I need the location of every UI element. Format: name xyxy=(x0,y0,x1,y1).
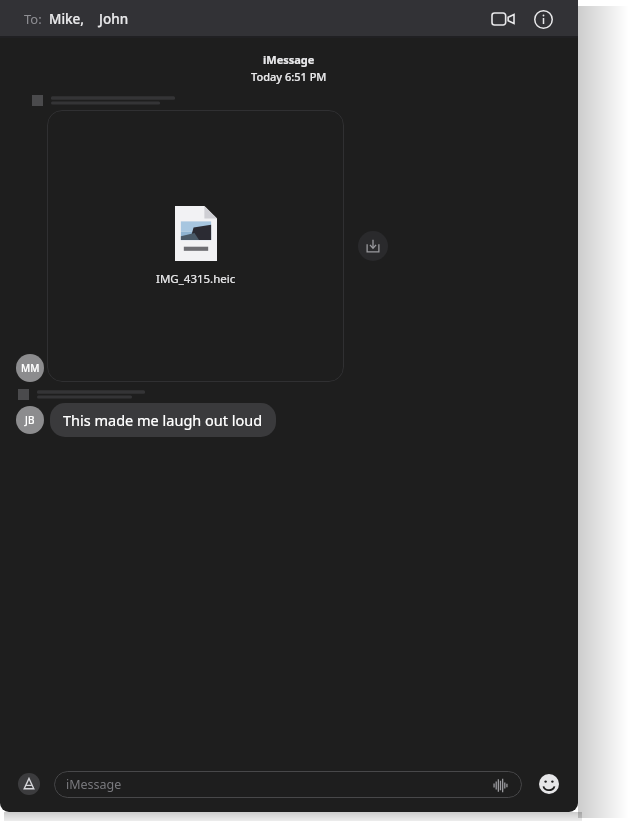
staticText: To: xyxy=(24,10,42,28)
button[interactable]: Mike, xyxy=(49,10,85,28)
button[interactable]: JB xyxy=(16,406,44,434)
button[interactable]: This made me laugh out loud xyxy=(50,403,276,437)
button[interactable]: IMG_4315.heic xyxy=(47,110,344,382)
staticText: Today 6:51 PM xyxy=(251,69,327,84)
staticText: John xyxy=(99,10,129,28)
button[interactable]: MM xyxy=(16,354,44,382)
staticText: IMG_4315.heic xyxy=(156,271,236,287)
button[interactable]: iMessage xyxy=(54,771,522,798)
button[interactable]: FaceTime video call xyxy=(486,2,520,36)
staticText: This made me laugh out loud xyxy=(63,410,263,430)
staticText: JB xyxy=(25,413,35,427)
button[interactable]: Record audio message xyxy=(490,775,510,795)
button[interactable]: Emoji picker xyxy=(536,771,562,797)
button[interactable]: Details xyxy=(526,2,560,36)
staticText: iMessage xyxy=(263,52,315,67)
button[interactable]: Download attachment xyxy=(358,231,388,261)
button[interactable]: Apps xyxy=(16,771,42,797)
button[interactable]: John xyxy=(99,10,129,28)
staticText: iMessage xyxy=(66,776,122,793)
staticText: MM xyxy=(21,361,40,375)
staticText: Mike, xyxy=(49,10,85,28)
